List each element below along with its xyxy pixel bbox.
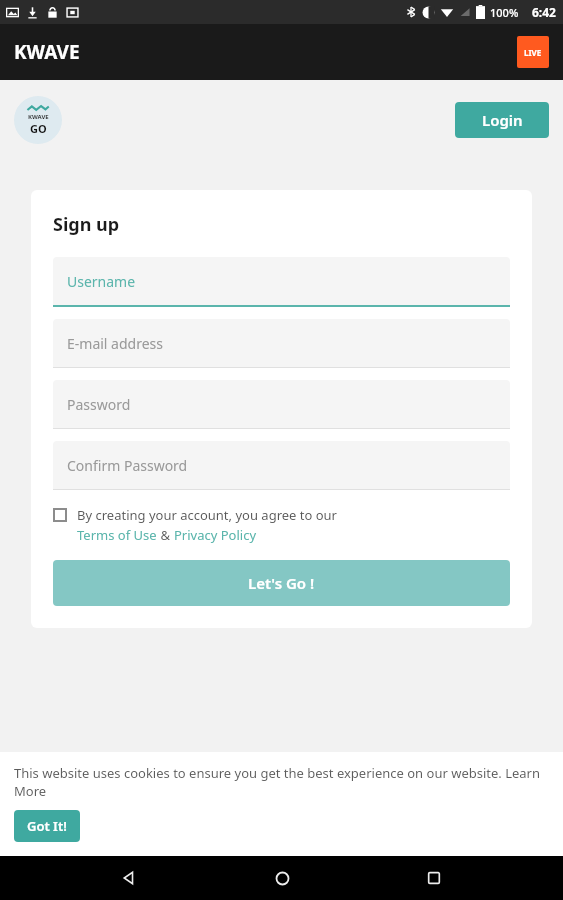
button[interactable]: Agree to terms checkbox (53, 506, 510, 544)
staticText: Login (482, 110, 523, 130)
staticText: Let's Go ! (248, 573, 315, 593)
button[interactable]: Confirm Password (53, 441, 510, 490)
button[interactable]: KWAVE GO logo (14, 96, 62, 144)
button[interactable]: Recent apps (410, 856, 458, 900)
staticText: Confirm Password (67, 456, 188, 475)
staticText: By creating your account, you agree to o… (77, 506, 337, 524)
other: Agree to terms checkbox (53, 508, 67, 522)
staticText: KWAVE (14, 39, 80, 65)
button[interactable]: E-mail address (53, 319, 510, 368)
button[interactable]: Home (258, 856, 306, 900)
staticText: & (157, 526, 174, 544)
staticText: Sign up (53, 212, 120, 237)
button[interactable]: Password (53, 380, 510, 429)
button[interactable]: Username (53, 257, 510, 307)
staticText: Got It! (27, 817, 67, 835)
button[interactable]: Back (105, 856, 153, 900)
staticText: KWAVE (28, 113, 49, 121)
button[interactable]: Kwave Live (517, 36, 549, 68)
button[interactable]: Got It! (14, 810, 80, 842)
button[interactable]: Login (455, 102, 549, 138)
staticText: LIVE (524, 47, 542, 58)
staticText: 100% (490, 5, 519, 20)
button[interactable]: Let's Go ! (53, 560, 510, 606)
staticText: Password (67, 395, 131, 414)
staticText: GO (30, 121, 47, 136)
staticText: E-mail address (67, 334, 163, 353)
staticText: Username (67, 272, 136, 291)
staticText: 6:42 (532, 4, 556, 20)
button[interactable]: Terms of Use (77, 526, 157, 544)
button[interactable]: Privacy Policy (174, 526, 257, 544)
staticText: This website uses cookies to ensure you … (14, 764, 549, 800)
